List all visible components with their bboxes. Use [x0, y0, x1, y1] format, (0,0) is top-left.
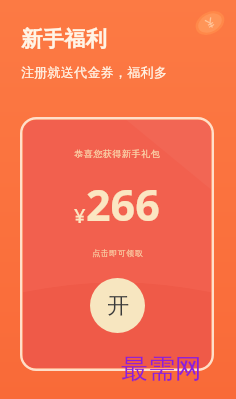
staticText: 最需网	[121, 352, 202, 386]
staticText: 开	[107, 292, 129, 320]
staticText: 注册就送代金券，福利多	[21, 64, 168, 80]
staticText: 266	[86, 175, 160, 234]
staticText: ¥	[74, 202, 86, 229]
button[interactable]: 恭喜您获得新手礼包	[20, 117, 214, 371]
button[interactable]: 开	[90, 278, 145, 333]
staticText: 新手福利	[21, 26, 107, 52]
staticText: 恭喜您获得新手礼包	[74, 148, 161, 159]
staticText: 点击即可领取	[92, 248, 143, 258]
other: Coin	[191, 5, 229, 41]
